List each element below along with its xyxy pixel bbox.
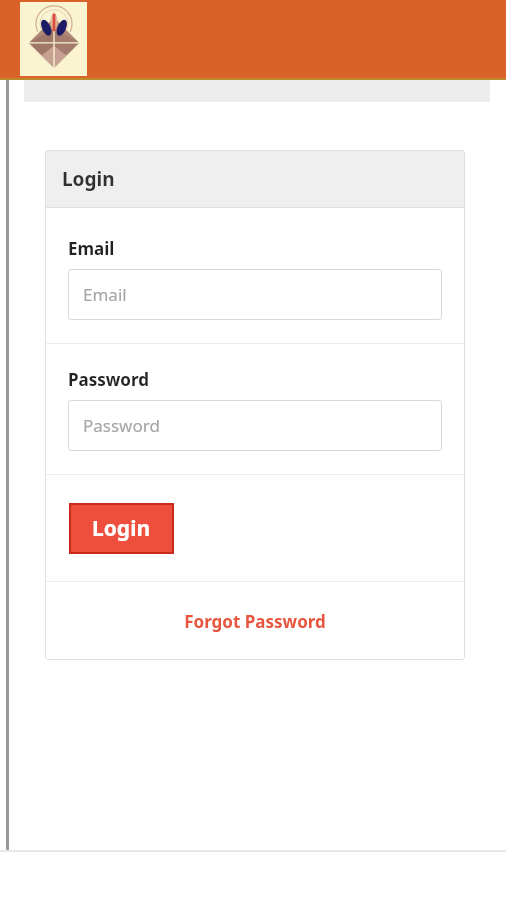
staticText: Login <box>92 514 151 543</box>
button[interactable]: Login <box>69 503 174 554</box>
button[interactable]: Email <box>68 269 442 320</box>
staticText: Forgot Password <box>184 610 326 633</box>
button[interactable]: Organisation logo <box>20 2 87 76</box>
staticText: Login <box>62 166 115 192</box>
button[interactable]: Forgot Password <box>45 582 465 660</box>
staticText: Password <box>83 414 160 437</box>
staticText: Email <box>68 237 115 260</box>
button[interactable]: Password <box>68 400 442 451</box>
staticText: Email <box>83 283 127 306</box>
staticText: Password <box>68 368 149 391</box>
